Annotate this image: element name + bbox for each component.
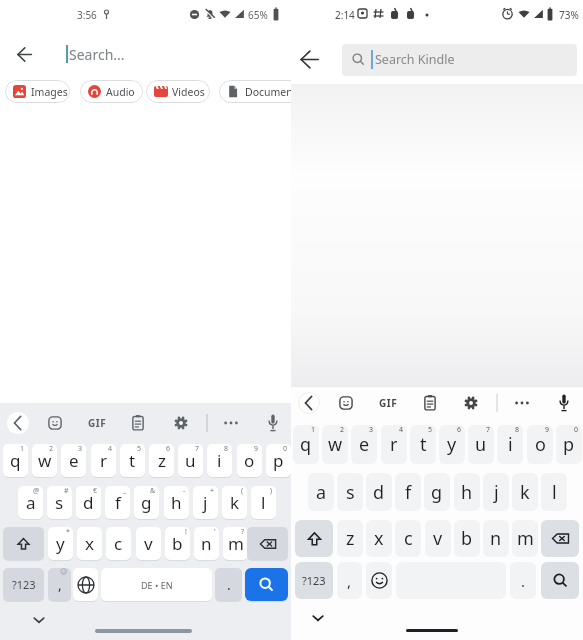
button[interactable]: j [193, 486, 218, 519]
button[interactable]: a [18, 486, 43, 519]
button[interactable]: t [410, 425, 436, 464]
button[interactable]: ?123 [295, 562, 333, 599]
button[interactable] [173, 415, 189, 431]
staticText: 2:14 [335, 8, 355, 22]
button[interactable] [557, 393, 571, 413]
button[interactable]: q [3, 444, 28, 477]
button[interactable]: p [556, 425, 582, 464]
button[interactable]: q [293, 425, 319, 464]
staticText: 4 [108, 444, 113, 454]
button[interactable]: c [395, 520, 421, 557]
button[interactable]: m [512, 520, 538, 557]
button[interactable] [3, 527, 44, 560]
button[interactable]: i [497, 425, 523, 464]
button[interactable]: d [366, 473, 392, 511]
button[interactable]: e [351, 425, 377, 464]
button[interactable]: x [77, 527, 102, 560]
button[interactable] [247, 527, 288, 560]
button[interactable] [338, 395, 354, 411]
button[interactable]: v [425, 520, 451, 557]
button[interactable]: s [47, 486, 72, 519]
button[interactable]: , [337, 562, 362, 599]
button[interactable] [80, 80, 143, 103]
button[interactable] [266, 413, 280, 433]
button[interactable]: h [454, 473, 480, 511]
button[interactable]: v [136, 527, 161, 560]
button[interactable]: b [454, 520, 480, 557]
button[interactable] [541, 562, 579, 599]
button[interactable] [222, 415, 240, 431]
button[interactable]: z [149, 444, 174, 477]
staticText: Videos [172, 85, 205, 99]
button[interactable] [146, 80, 210, 103]
button[interactable]: . [510, 562, 536, 599]
button[interactable]: r [91, 444, 116, 477]
staticText: f [115, 491, 121, 514]
button[interactable]: u [468, 425, 494, 464]
button[interactable] [541, 520, 579, 557]
button[interactable]: , [48, 568, 71, 601]
button[interactable] [47, 415, 63, 431]
button[interactable]: j [483, 473, 509, 511]
button[interactable]: i [207, 444, 232, 477]
button[interactable]: d [76, 486, 101, 519]
button[interactable] [219, 80, 291, 103]
button[interactable] [422, 394, 438, 412]
button[interactable]: k [512, 473, 538, 511]
button[interactable] [5, 80, 70, 103]
button[interactable]: ?123 [3, 568, 44, 601]
button[interactable] [366, 562, 392, 599]
button[interactable]: g [424, 473, 450, 511]
staticText: GIF [88, 416, 107, 430]
button[interactable] [310, 611, 326, 625]
button[interactable] [7, 412, 29, 434]
button[interactable]: h [164, 486, 189, 519]
button[interactable]: n [194, 527, 219, 560]
staticText: r [100, 449, 108, 472]
button[interactable] [463, 395, 479, 411]
button[interactable]: b [165, 527, 190, 560]
button[interactable] [130, 414, 146, 432]
button[interactable]: c [106, 527, 131, 560]
button[interactable]: w [32, 444, 57, 477]
button[interactable]: e [61, 444, 86, 477]
button[interactable]: y [439, 425, 465, 464]
button[interactable]: t [120, 444, 145, 477]
button[interactable] [73, 568, 98, 601]
button[interactable]: o [527, 425, 553, 464]
button[interactable]: a [308, 473, 334, 511]
button[interactable]: x [366, 520, 392, 557]
button[interactable]: l [251, 486, 276, 519]
staticText: x [374, 526, 384, 551]
button[interactable]: r [381, 425, 407, 464]
button[interactable] [245, 568, 288, 601]
staticText: a [316, 480, 327, 505]
button[interactable] [300, 50, 319, 69]
button[interactable]: f [395, 473, 421, 511]
button[interactable]: DE • EN [101, 568, 212, 601]
button[interactable] [31, 613, 47, 627]
button[interactable] [295, 520, 333, 557]
button[interactable] [342, 44, 577, 76]
button[interactable]: y [48, 527, 73, 560]
staticText: ?123 [302, 573, 326, 588]
button[interactable] [513, 395, 531, 411]
button[interactable]: k [222, 486, 247, 519]
button[interactable]: s [337, 473, 363, 511]
button[interactable]: z [337, 520, 363, 557]
button[interactable]: w [322, 425, 348, 464]
button[interactable]: m [223, 527, 248, 560]
button[interactable]: p [266, 444, 291, 477]
button[interactable]: f [105, 486, 130, 519]
button[interactable]: o [237, 444, 262, 477]
staticText: 7 [486, 425, 491, 435]
button[interactable]: u [178, 444, 203, 477]
button[interactable]: . [215, 568, 242, 601]
button[interactable] [298, 392, 320, 414]
button[interactable]: g [134, 486, 159, 519]
button[interactable] [17, 47, 32, 62]
button[interactable]: n [483, 520, 509, 557]
staticText: 5 [428, 425, 433, 435]
button[interactable]: l [541, 473, 567, 511]
